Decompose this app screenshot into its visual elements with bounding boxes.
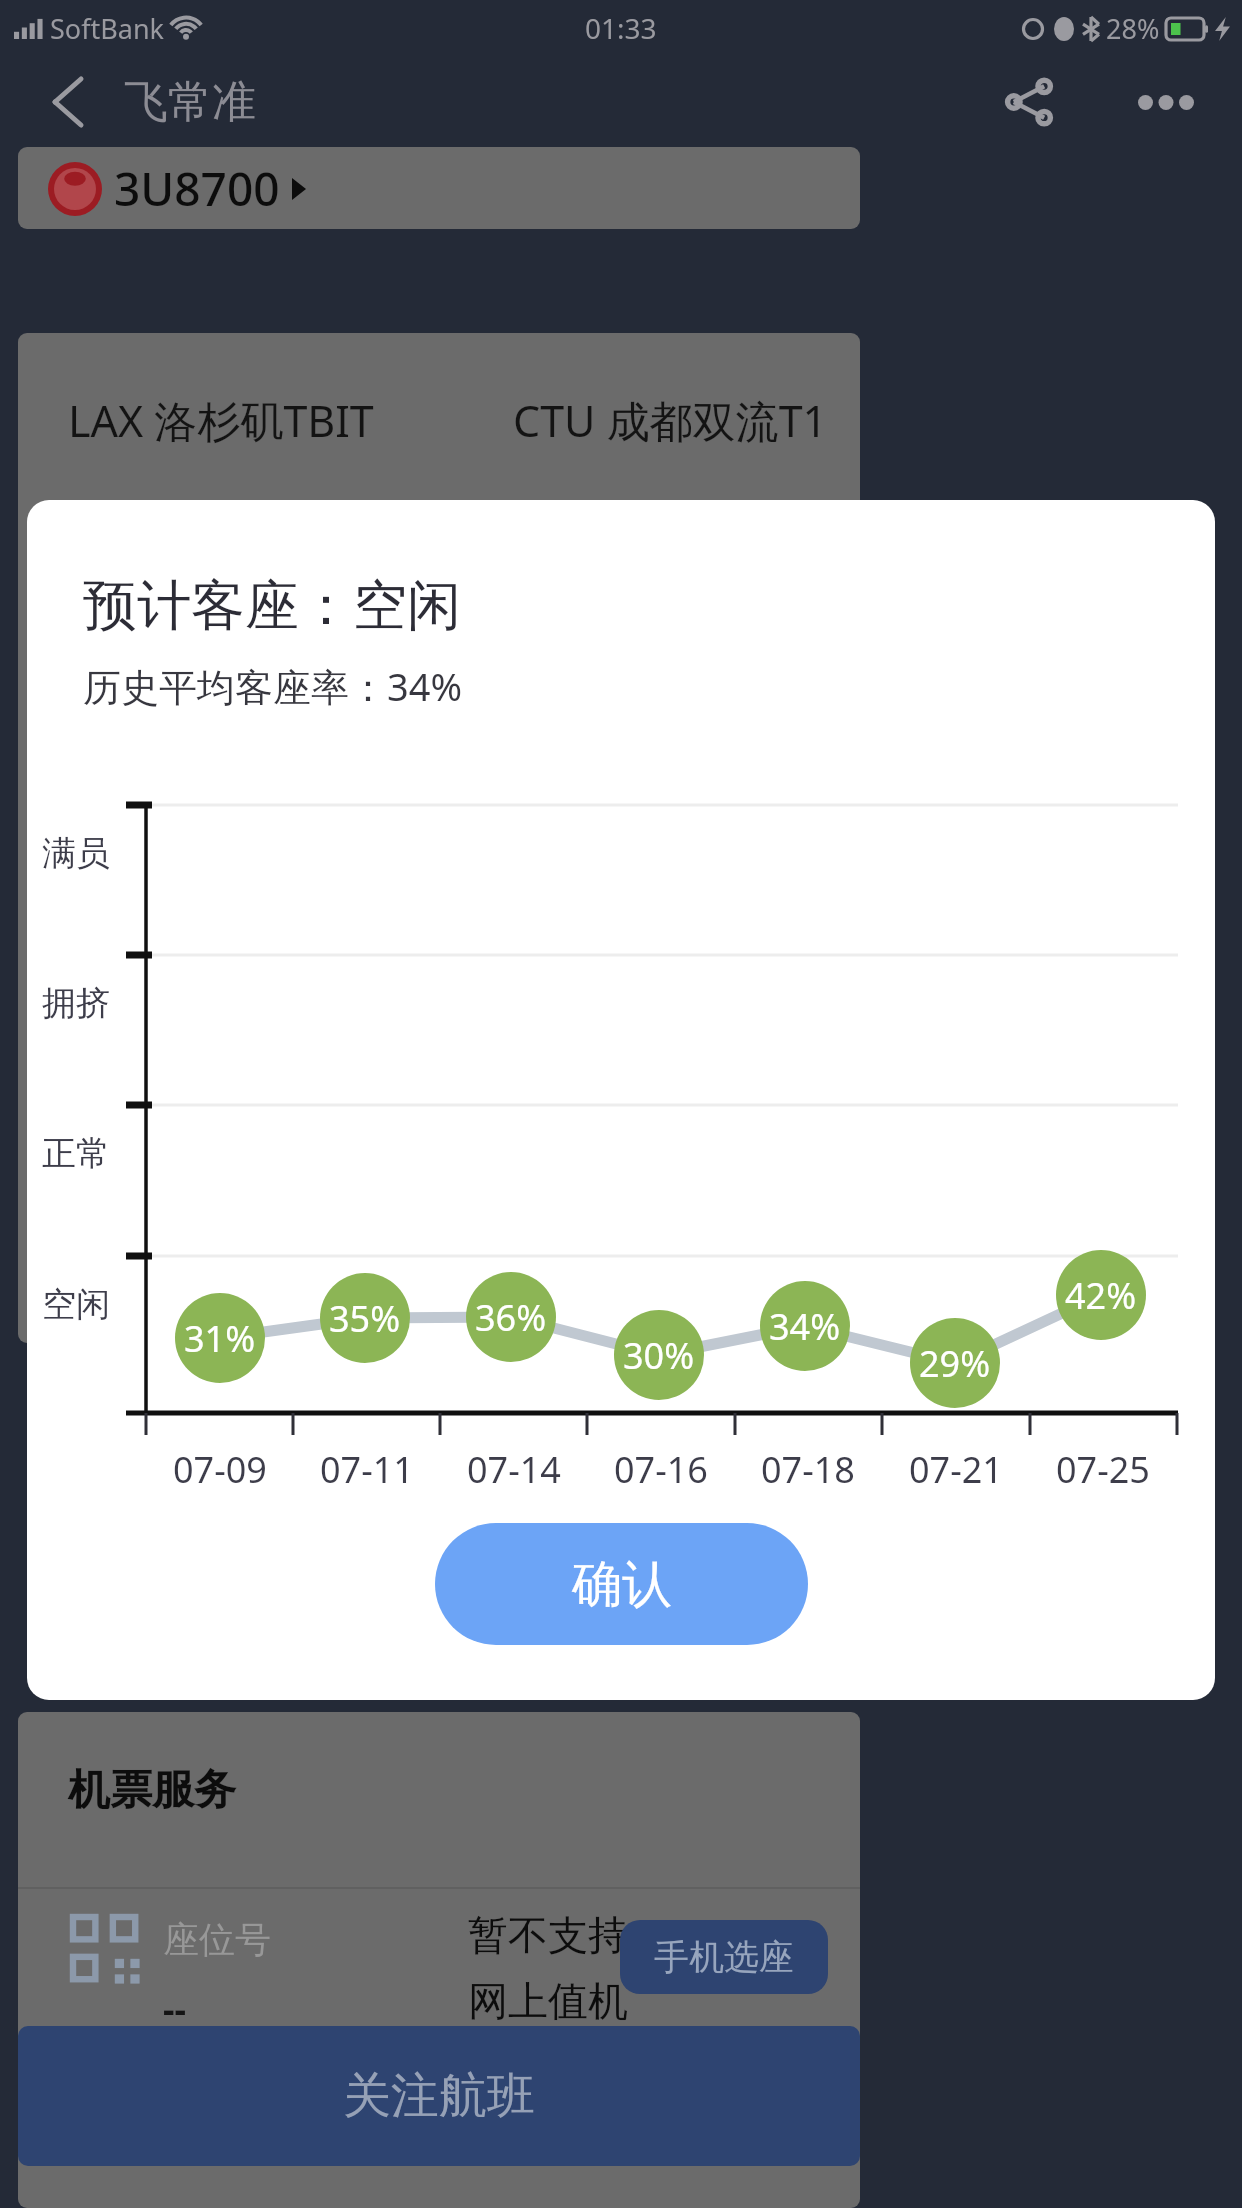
staticText: 关注航班 [343, 2066, 535, 2126]
staticText: LAX 洛杉矶TBIT [68, 391, 374, 450]
staticText: 01:33 [585, 9, 657, 47]
staticText: 30% [623, 1331, 695, 1380]
staticText: 07-25 [1056, 1445, 1150, 1494]
staticText: 35% [329, 1294, 401, 1343]
button[interactable]: 关注航班 [18, 2026, 860, 2166]
staticText: 空闲 [42, 1283, 110, 1326]
staticText: 正常 [42, 1132, 110, 1175]
staticText: 网上值机 [468, 1976, 628, 2026]
staticText: SoftBank [50, 10, 164, 47]
staticText: 31% [184, 1314, 256, 1363]
staticText: 满员 [42, 832, 110, 875]
staticText: 机票服务 [68, 1764, 236, 1817]
staticText: 29% [919, 1339, 991, 1388]
button[interactable]: 3U8700 [18, 147, 860, 229]
button[interactable]: More options [1128, 64, 1204, 140]
staticText: 确认 [572, 1553, 672, 1616]
button[interactable]: 确认 [435, 1523, 808, 1645]
staticText: -- [163, 1984, 187, 2033]
staticText: 07-18 [761, 1445, 855, 1494]
staticText: 07-11 [320, 1445, 414, 1494]
staticText: 28% [1106, 10, 1160, 47]
staticText: 36% [475, 1293, 547, 1342]
staticText: 3U8700 [114, 157, 280, 220]
button[interactable]: 手机选座 [620, 1920, 828, 1994]
staticText: 手机选座 [654, 1935, 794, 1979]
staticText: 34% [769, 1302, 841, 1351]
button[interactable]: Back [32, 66, 104, 138]
staticText: 暂不支持 [468, 1910, 628, 1960]
staticText: 历史平均客座率：34% [83, 660, 463, 712]
staticText: 07-09 [173, 1445, 267, 1494]
staticText: 飞常准 [124, 75, 256, 130]
staticText: 预计客座：空闲 [83, 572, 461, 640]
button[interactable]: Share [991, 64, 1067, 140]
staticText: CTU 成都双流T1 [513, 391, 828, 450]
staticText: 拥挤 [42, 982, 110, 1025]
staticText: 07-14 [467, 1445, 561, 1494]
staticText: 07-16 [614, 1445, 708, 1494]
staticText: 07-21 [909, 1445, 1003, 1494]
staticText: 42% [1065, 1271, 1137, 1320]
staticText: 座位号 [163, 1917, 271, 1962]
